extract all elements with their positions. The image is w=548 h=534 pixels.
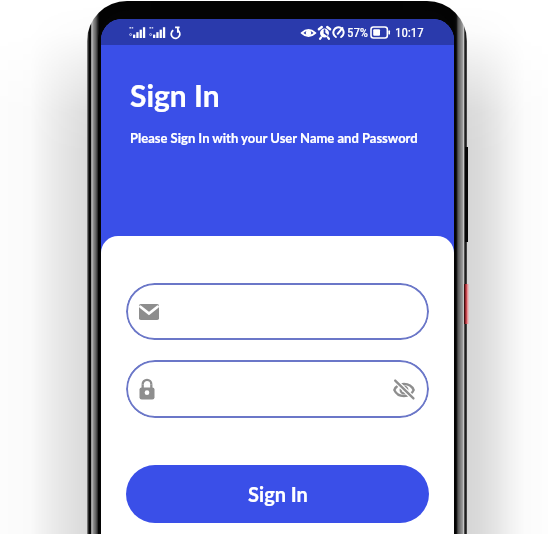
staticText: Sign In (248, 482, 308, 506)
staticText: Sign In (130, 77, 220, 113)
staticText: 57% (347, 25, 369, 40)
button[interactable]: Sign In (126, 465, 429, 523)
button[interactable] (126, 283, 429, 340)
staticText: 10:17 (395, 25, 424, 40)
staticText: Please Sign In with your User Name and P… (130, 130, 418, 146)
button[interactable]: Show password (393, 380, 415, 399)
button[interactable]: Show password (126, 360, 429, 418)
